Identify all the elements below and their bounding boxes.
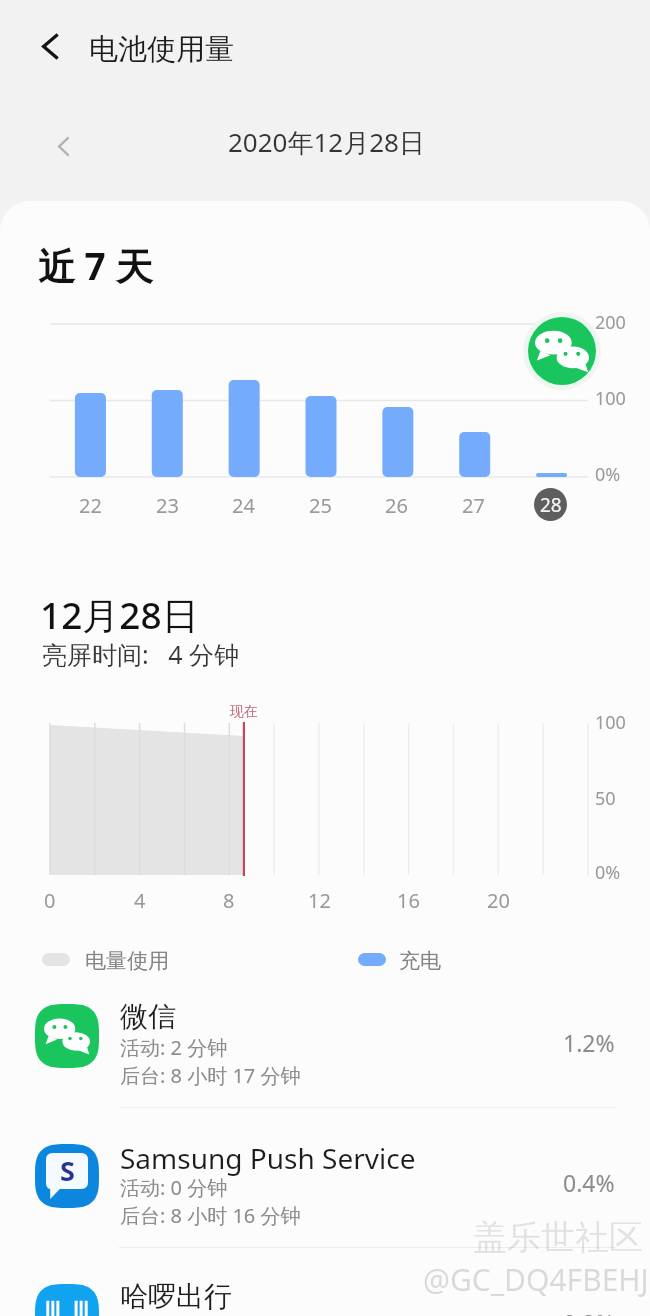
staticText: 0.2% [563,1307,615,1316]
staticText: 电池使用量 [89,31,234,68]
staticText: 23 [156,492,179,516]
staticText: 活动: 2 分钟 [120,1034,228,1061]
staticText: 12 [308,887,331,911]
staticText: 22 [79,492,102,516]
button[interactable]: Back [22,19,78,73]
button[interactable]: WeChat [528,317,596,385]
button[interactable]: 哈啰出行 [0,1276,650,1316]
staticText: 2020年12月28日 [228,124,425,160]
staticText: 后台: 8 小时 16 分钟 [120,1202,301,1229]
staticText: 0% [595,860,621,885]
staticText: 24 [232,492,255,516]
button[interactable]: S [0,1136,650,1276]
staticText: 8 [223,887,235,911]
button[interactable]: 微信 [0,996,650,1136]
staticText: 25 [309,492,332,516]
staticText: S [60,1152,75,1189]
staticText: 近 7 天 [38,240,153,291]
staticText: 现在 [230,703,258,721]
staticText: 12月28日 [40,589,199,640]
button[interactable]: 28 [534,488,567,521]
staticText: 4 [134,887,146,911]
staticText: Samsung Push Service [120,1139,416,1177]
button[interactable]: Previous day [39,119,87,173]
staticText: 50 [595,786,616,811]
staticText: 1.2% [563,1027,615,1058]
staticText: 0 [44,887,56,911]
staticText: 哈啰出行 [120,1279,232,1314]
staticText: 0% [595,462,621,487]
staticText: 20 [487,887,510,911]
staticText: 16 [397,887,420,911]
staticText: 100 [595,710,626,735]
staticText: 充电 [399,948,441,974]
staticText: 微信 [120,999,176,1034]
staticText: 盖乐世社区 [473,1216,643,1259]
staticText: 100 [595,386,626,411]
staticText: @GC_DQ4FBEHJ [423,1259,649,1300]
staticText: 电量使用 [85,948,169,974]
staticText: 200 [595,310,626,335]
staticText: 后台: 8 小时 17 分钟 [120,1062,301,1089]
staticText: 27 [462,492,485,516]
staticText: 亮屏时间: 4 分钟 [42,637,240,671]
staticText: 0.4% [563,1167,615,1198]
staticText: 26 [385,492,408,516]
staticText: 活动: 0 分钟 [120,1174,228,1201]
staticText: 28 [540,492,562,518]
